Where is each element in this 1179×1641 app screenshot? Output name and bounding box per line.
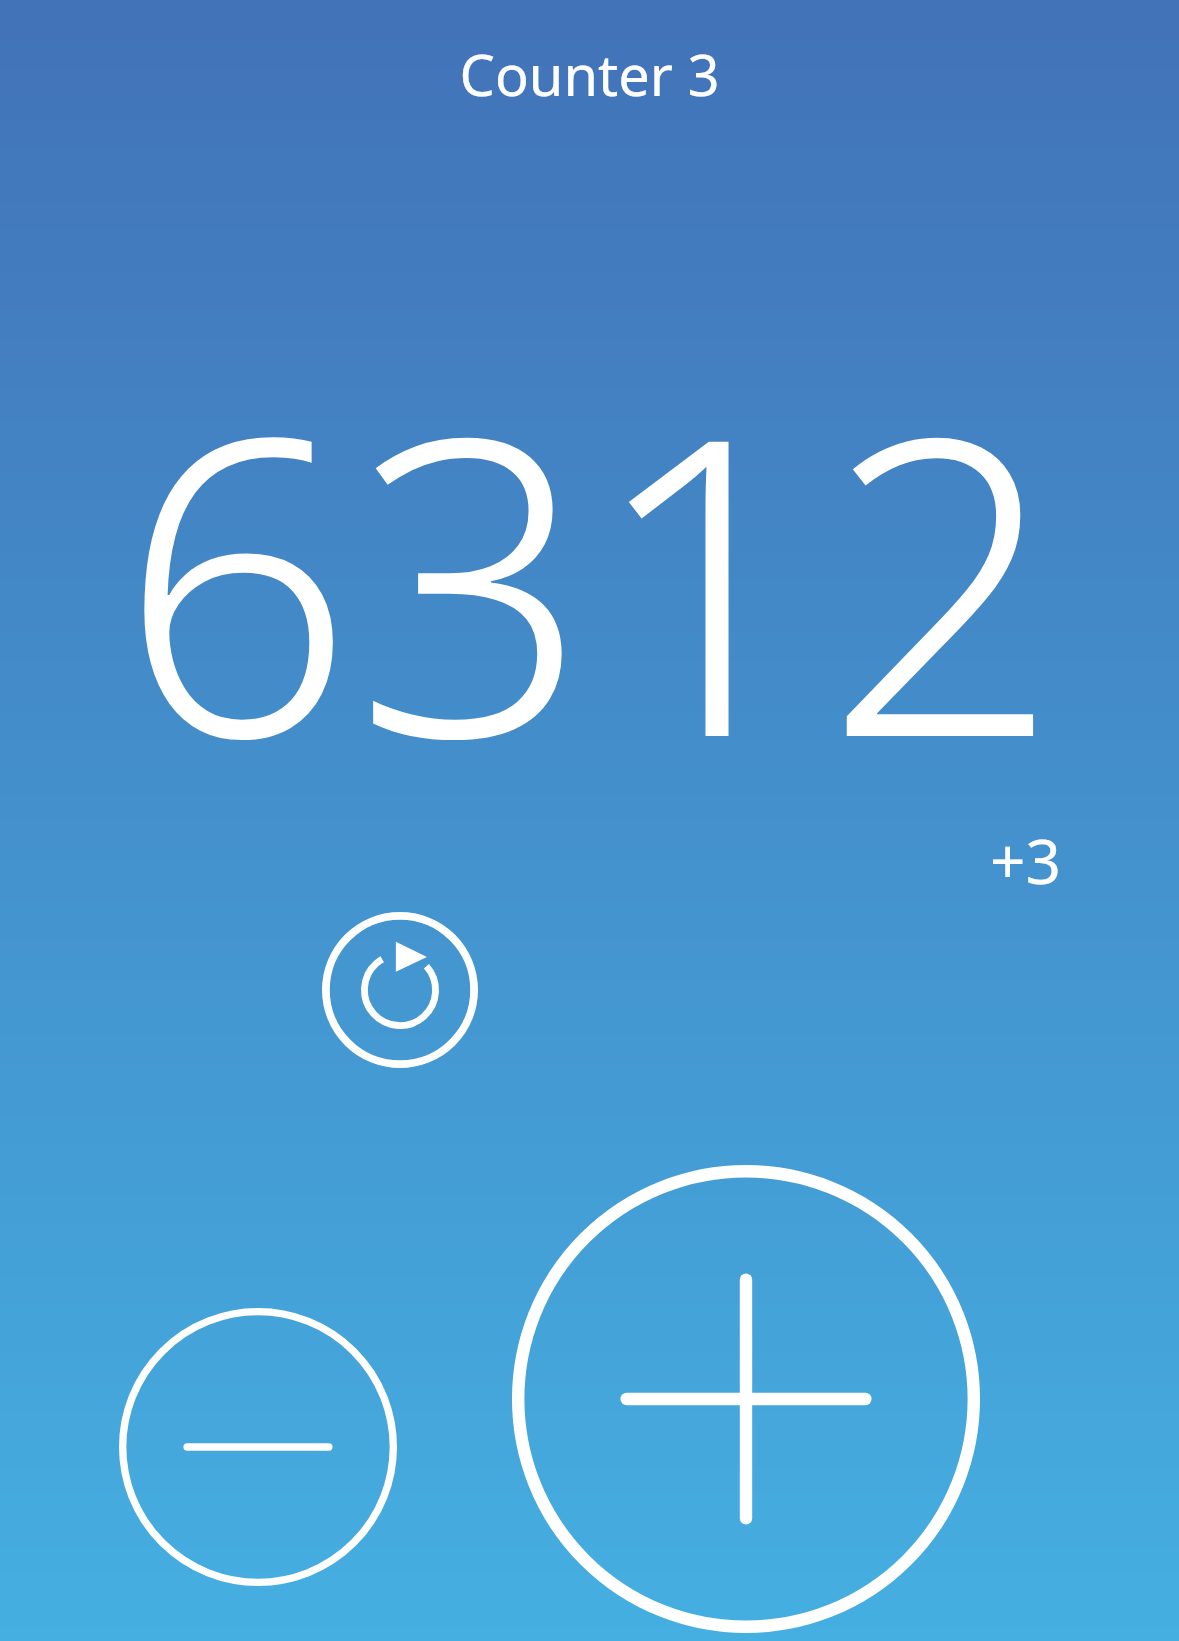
button[interactable]: Decrement	[119, 1308, 397, 1586]
button[interactable]: Reset counter	[322, 912, 478, 1068]
staticText: 6312	[0, 296, 1179, 857]
button[interactable]: Increment	[512, 1165, 980, 1633]
staticText: +3	[990, 818, 1061, 902]
staticText: Counter 3	[0, 36, 1179, 112]
